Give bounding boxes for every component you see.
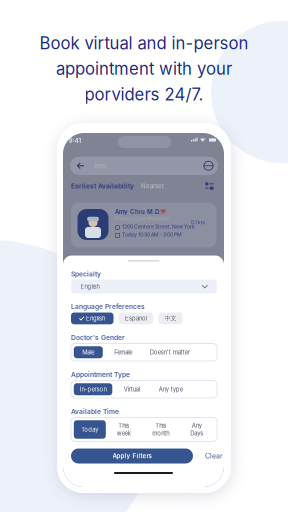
staticText: appointment with your [56,59,232,79]
button[interactable]: Apply Filters [71,448,193,463]
staticText: Doctor's Gender [71,333,125,342]
staticText: Appointment Type [71,370,130,379]
staticText: Today 10:30 AM - 3:00 PM [122,231,182,238]
button[interactable]: Amy [70,156,218,175]
staticText: 中文 [164,315,176,322]
staticText: Any type [159,386,183,393]
staticText: Specialty [71,270,101,278]
staticText: Any [192,422,202,429]
staticText: This [155,422,166,429]
button[interactable]: English [71,312,113,324]
staticText: month [152,430,169,437]
staticText: 0.1 km [191,219,205,225]
staticText: Earliest Availability [71,182,134,190]
staticText: Available Time [71,407,119,416]
button[interactable]: This [142,420,180,439]
staticText: Amy Chiu M.D. [115,208,161,215]
button[interactable]: Any type [151,383,190,395]
button[interactable]: Male [74,346,103,358]
staticText: Today [81,426,98,433]
button[interactable]: This [106,420,142,439]
button[interactable]: English [71,279,217,293]
staticText: Doesn't matter [150,349,190,356]
staticText: Female [114,349,132,356]
button[interactable]: Any [180,420,214,439]
button[interactable]: Nearset [141,182,164,190]
staticText: Days [190,430,203,437]
staticText: porviders 24/7. [84,84,203,104]
staticText: 1200 Centere Street, New York [122,223,195,230]
button[interactable]: 中文 [158,312,182,324]
button[interactable]: Change layout [205,182,214,190]
staticText: English [80,283,99,290]
staticText: Book virtual and in-person [39,33,248,53]
button[interactable]: Earliest Availability [71,182,134,190]
staticText: Clear [205,452,223,460]
staticText: week [117,430,131,437]
staticText: ♥ [160,208,166,215]
button[interactable]: Today [74,420,106,439]
staticText: Primary Care Physician [115,215,170,222]
staticText: Male [82,349,94,356]
staticText: Espanol [125,315,147,322]
button[interactable]: Amy Chiu M.D. [71,202,216,247]
staticText: This [118,422,129,429]
staticText: Language Preferences [71,302,145,311]
staticText: Virtual [124,386,140,393]
button[interactable]: Clear [201,449,227,463]
button[interactable]: Doesn't matter [144,346,196,358]
staticText: English [86,315,105,322]
button[interactable]: Espanol [119,312,153,324]
staticText: Nearset [141,182,164,190]
staticText: Apply Filters [112,452,151,460]
button[interactable]: Female [103,346,144,358]
staticText: 9:41 [68,136,81,144]
button[interactable]: Virtual [112,383,151,395]
button[interactable]: In-person [74,383,112,395]
staticText: In-person [79,386,106,393]
staticText: Amy [94,162,106,169]
